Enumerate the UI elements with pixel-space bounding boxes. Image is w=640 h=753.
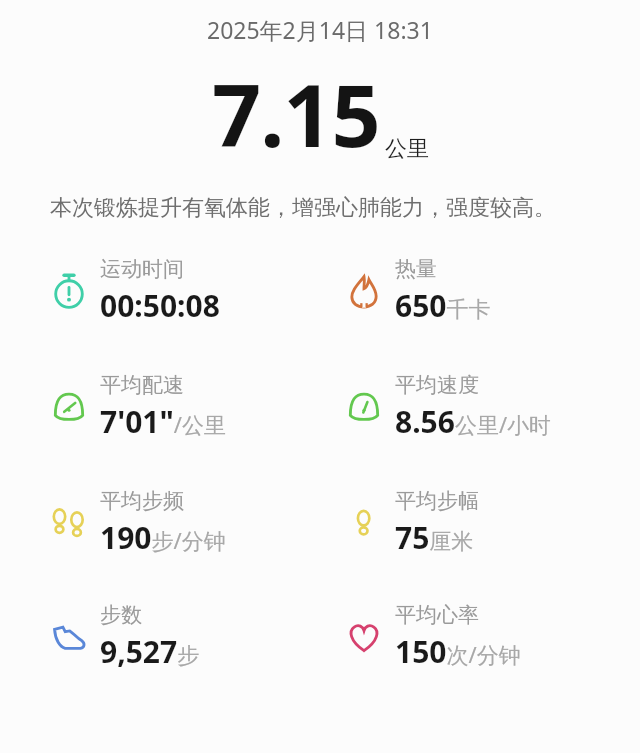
staticText: 平均步幅	[395, 488, 479, 514]
staticText: 75厘米	[395, 517, 474, 558]
button[interactable]: 热量	[343, 256, 491, 326]
staticText: 本次锻炼提升有氧体能，增强心肺能力，强度较高。	[50, 194, 584, 222]
staticText: 00:50:08	[100, 285, 220, 326]
staticText: 2025年2月14日 18:31	[207, 14, 433, 45]
button[interactable]: 平均配速	[48, 372, 227, 442]
staticText: 运动时间	[100, 256, 184, 282]
staticText: 9,527步	[100, 631, 200, 672]
button[interactable]: 步数	[48, 602, 200, 672]
staticText: 190步/分钟	[100, 517, 226, 558]
staticText: 8.56公里/小时	[395, 401, 552, 442]
staticText: 平均步频	[100, 488, 184, 514]
button[interactable]: 平均速度	[343, 372, 552, 442]
staticText: 650千卡	[395, 285, 491, 326]
staticText: 公里	[385, 135, 429, 163]
staticText: 7'01"/公里	[100, 401, 227, 442]
staticText: 7.15	[212, 55, 380, 172]
staticText: 平均配速	[100, 372, 184, 398]
staticText: 步数	[100, 602, 142, 628]
staticText: 平均心率	[395, 602, 479, 628]
button[interactable]: 运动时间	[48, 256, 220, 326]
staticText: 平均速度	[395, 372, 479, 398]
staticText: 150次/分钟	[395, 631, 521, 672]
button[interactable]: 平均步幅	[343, 488, 479, 558]
button[interactable]: 平均心率	[343, 602, 521, 672]
button[interactable]: 平均步频	[48, 488, 226, 558]
staticText: 热量	[395, 256, 437, 282]
